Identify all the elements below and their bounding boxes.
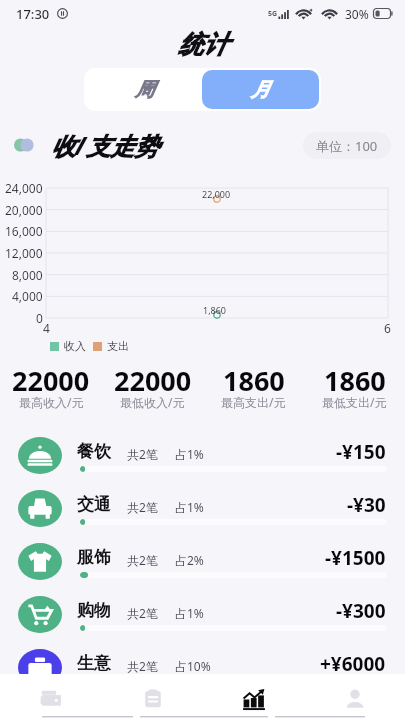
staticText: 收/支走势 xyxy=(51,129,159,162)
staticText: -¥150 xyxy=(336,439,386,465)
staticText: 22000 xyxy=(114,362,192,399)
staticText: 17:30 xyxy=(16,5,50,23)
button[interactable]: 购物 xyxy=(0,587,405,640)
staticText: 共2笔 xyxy=(127,446,158,462)
staticText: 购物 xyxy=(77,600,111,621)
staticText: 占1% xyxy=(175,605,204,621)
button[interactable]: 交通 xyxy=(0,481,405,534)
button[interactable]: 周 xyxy=(86,70,202,109)
staticText: 支出 xyxy=(107,339,129,353)
staticText: 0 xyxy=(36,310,43,326)
staticText: 周 xyxy=(135,78,154,102)
staticText: 22000 xyxy=(12,362,90,399)
staticText: 占1% xyxy=(175,499,204,515)
staticText: 最高支出/元 xyxy=(221,394,286,409)
staticText: 30% xyxy=(345,6,369,22)
button[interactable]: Wallet xyxy=(0,682,102,716)
staticText: 生意 xyxy=(77,653,111,674)
staticText: 共2笔 xyxy=(127,605,158,621)
staticText: 占1% xyxy=(175,446,204,462)
staticText: -¥30 xyxy=(347,492,386,518)
staticText: 最高收入/元 xyxy=(19,394,84,409)
button[interactable]: Profile xyxy=(304,682,405,716)
staticText: +¥6000 xyxy=(320,651,386,677)
button[interactable]: 服饰 xyxy=(0,534,405,587)
staticText: 4 xyxy=(43,320,50,336)
staticText: 12,000 xyxy=(5,245,43,261)
staticText: 共2笔 xyxy=(127,658,158,674)
staticText: 占2% xyxy=(175,552,204,568)
staticText: 22,000 xyxy=(202,188,231,200)
button[interactable]: Records xyxy=(102,682,203,716)
staticText: 统计 xyxy=(178,29,228,60)
staticText: 占10% xyxy=(175,658,211,674)
staticText: 5G xyxy=(268,9,278,19)
button[interactable]: 生意 xyxy=(0,640,405,693)
staticText: 8,000 xyxy=(12,267,43,283)
staticText: 20,000 xyxy=(5,202,43,218)
staticText: 24,000 xyxy=(5,180,43,196)
staticText: 月 xyxy=(251,78,270,102)
staticText: 交通 xyxy=(77,494,111,515)
staticText: 4,000 xyxy=(12,288,43,304)
staticText: 共2笔 xyxy=(127,552,158,568)
staticText: -¥300 xyxy=(336,598,386,624)
button[interactable]: Statistics xyxy=(203,682,304,716)
button[interactable]: 餐饮 xyxy=(0,428,405,481)
staticText: 6 xyxy=(384,320,391,336)
staticText: 餐饮 xyxy=(77,441,111,462)
staticText: -¥1500 xyxy=(325,545,386,571)
staticText: 1,860 xyxy=(203,304,227,316)
staticText: 单位：100 xyxy=(316,137,378,155)
staticText: 1860 xyxy=(324,362,386,399)
button[interactable]: 单位：100 xyxy=(303,132,391,159)
staticText: 16,000 xyxy=(5,223,43,239)
staticText: 最低收入/元 xyxy=(120,394,185,409)
staticText: 收入 xyxy=(64,339,86,353)
staticText: 共2笔 xyxy=(127,499,158,515)
staticText: 1860 xyxy=(223,362,285,399)
button[interactable]: 月 xyxy=(202,70,319,109)
staticText: 最低支出/元 xyxy=(322,394,387,409)
staticText: 服饰 xyxy=(77,547,111,568)
